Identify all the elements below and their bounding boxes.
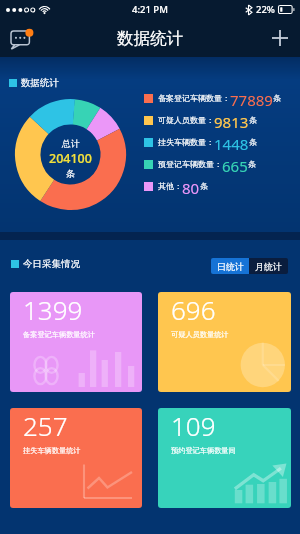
staticText: 109 [171, 408, 216, 443]
staticText: 80 [182, 178, 200, 194]
staticText: 1399 [23, 292, 83, 327]
staticText: 日统计 [217, 261, 244, 272]
staticText: 预登记车辆数量 [158, 159, 214, 169]
button[interactable]: 日统计 [211, 258, 249, 274]
staticText: 条 [248, 159, 256, 169]
staticText: 204100 [49, 150, 92, 167]
staticText: 可疑人员数量统计 [171, 330, 229, 339]
staticText: ： [206, 137, 214, 147]
staticText: 挂失车辆数量统计 [23, 446, 81, 455]
staticText: 77889 [230, 90, 273, 106]
staticText: 257 [23, 408, 68, 443]
staticText: 备案登记车辆数量 [158, 93, 222, 103]
button[interactable]: Messages [7, 23, 37, 53]
staticText: 665 [222, 156, 248, 172]
staticText: 月统计 [255, 261, 282, 272]
staticText: 其他 [158, 181, 174, 191]
staticText: 9813 [214, 112, 249, 128]
button[interactable]: 257 [10, 408, 142, 508]
staticText: 条 [273, 93, 281, 103]
staticText: 4:21 PM [132, 3, 168, 16]
button[interactable]: 月统计 [249, 258, 288, 274]
staticText: ： [222, 93, 230, 103]
button[interactable]: 109 [158, 408, 291, 508]
staticText: 挂失车辆数量 [158, 137, 206, 147]
staticText: ： [206, 115, 214, 125]
staticText: 696 [171, 292, 216, 327]
staticText: 总计 [62, 138, 80, 149]
staticText: 条 [66, 168, 75, 179]
staticText: 条 [249, 137, 257, 147]
staticText: 备案登记车辆数量统计 [23, 330, 95, 339]
staticText: ： [214, 159, 222, 169]
staticText: 数据统计 [117, 28, 183, 49]
staticText: 条 [249, 115, 257, 125]
staticText: ： [174, 181, 182, 191]
staticText: 数据统计 [21, 77, 59, 89]
button[interactable]: 1399 [10, 292, 142, 392]
staticText: 1448 [214, 134, 249, 150]
staticText: 预约登记车辆数量间 [171, 446, 236, 455]
button[interactable]: Add [265, 23, 295, 53]
staticText: 条 [200, 181, 208, 191]
staticText: 22% [256, 3, 275, 16]
staticText: 可疑人员数量 [158, 115, 206, 125]
button[interactable]: 696 [158, 292, 291, 392]
staticText: 今日采集情况 [23, 258, 80, 270]
